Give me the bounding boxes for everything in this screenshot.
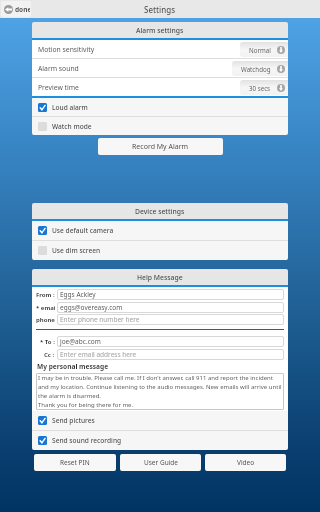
other: Choose Preview time [277, 84, 285, 92]
button[interactable]: Watch mode [32, 117, 288, 135]
button[interactable]: * email [36, 302, 284, 313]
staticText: Reset PIN [60, 458, 90, 467]
staticText: Send pictures [52, 416, 95, 425]
button[interactable]: Send pictures [32, 411, 288, 430]
staticText: I may be in trouble. Please call me. If … [38, 374, 282, 409]
staticText: Cc : [44, 351, 55, 359]
staticText: Watchdog [241, 65, 271, 73]
staticText: * To : [40, 338, 55, 346]
staticText: Use dim screen [52, 246, 101, 255]
staticText: eggs@overeasy.com [60, 303, 123, 312]
button[interactable]: Preview time [32, 78, 288, 96]
button[interactable]: * To : [36, 336, 284, 347]
button[interactable]: User Guide [120, 454, 201, 471]
other: Choose Motion sensitivity [277, 46, 285, 54]
button[interactable]: phone [36, 314, 284, 325]
staticText: Motion sensitivity [38, 45, 95, 54]
staticText: My personal message [37, 362, 109, 371]
staticText: joe@abc.com [60, 337, 101, 346]
staticText: Use default camera [52, 226, 114, 235]
staticText: phone [36, 316, 55, 324]
button[interactable]: Cc : [36, 349, 284, 360]
staticText: Enter phone number here [60, 315, 140, 324]
staticText: From : [36, 291, 55, 299]
staticText: Watch mode [52, 122, 92, 131]
button[interactable]: Video [205, 454, 286, 471]
staticText: Enter email address here [60, 350, 137, 359]
staticText: Send sound recording [52, 436, 122, 445]
button[interactable]: Send sound recording [32, 431, 288, 450]
staticText: Preview time [38, 83, 79, 92]
staticText: Record My Alarm [132, 142, 189, 152]
staticText: Help Message [137, 273, 183, 282]
staticText: User Guide [144, 458, 178, 467]
button[interactable]: Motion sensitivity [32, 40, 288, 58]
staticText: Alarm settings [136, 26, 184, 35]
staticText: Settings [144, 4, 176, 15]
button[interactable]: Loud alarm [32, 98, 288, 116]
button[interactable]: Alarm sound [32, 59, 288, 77]
staticText: Normal [249, 46, 271, 54]
button[interactable]: Reset PIN [34, 454, 116, 471]
staticText: Loud alarm [52, 103, 88, 112]
button[interactable]: From : [36, 289, 284, 300]
button[interactable]: I may be in trouble. Please call me. If … [38, 374, 282, 409]
staticText: * email [36, 304, 55, 312]
staticText: done [15, 5, 30, 14]
staticText: 30 secs [249, 84, 271, 92]
button[interactable]: Record My Alarm [98, 138, 223, 155]
button[interactable]: Use dim screen [32, 241, 288, 260]
other: Choose Alarm sound [277, 65, 285, 73]
staticText: Video [237, 458, 255, 467]
staticText: Device settings [135, 207, 185, 216]
staticText: Alarm sound [38, 64, 79, 73]
button[interactable]: Use default camera [32, 221, 288, 240]
button[interactable]: done [1, 1, 31, 17]
staticText: Eggs Ackley [60, 290, 96, 299]
